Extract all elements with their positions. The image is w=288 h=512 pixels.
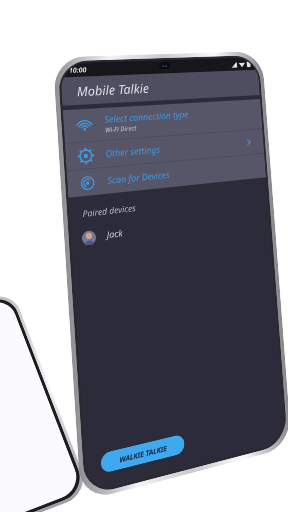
button[interactable]: WALKIE TALKIE [100, 434, 185, 474]
staticText: 10:00 [69, 65, 88, 75]
staticText: Paired devices [82, 201, 137, 219]
button[interactable]: Select connection type [63, 99, 262, 143]
staticText: Other settings [105, 143, 160, 160]
button[interactable]: Jack [70, 204, 270, 252]
staticText: Jack [106, 226, 124, 241]
staticText: Mobile Talkie [76, 79, 150, 100]
staticText: Select connection type [104, 108, 189, 126]
button[interactable]: Other settings [65, 129, 264, 170]
staticText: Wi-Fi Direct [105, 124, 137, 134]
button[interactable]: Scan for Devices [67, 154, 266, 198]
staticText: WALKIE TALKIE [119, 443, 168, 465]
staticText: Scan for Devices [107, 168, 170, 187]
